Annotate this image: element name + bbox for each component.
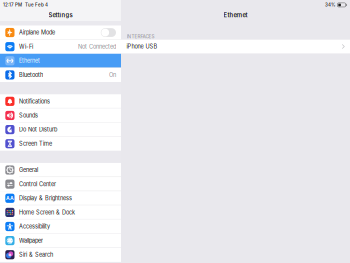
staticText: iPhone USB xyxy=(126,43,157,50)
button[interactable]: Screen Time xyxy=(0,137,121,151)
button[interactable]: Home Screen & Dock xyxy=(0,205,121,219)
staticText: Accessibility xyxy=(19,223,50,230)
button[interactable]: Bluetooth xyxy=(0,68,121,82)
staticText: Bluetooth xyxy=(19,71,43,78)
staticText: Wallpaper xyxy=(19,237,43,244)
button[interactable]: Sounds xyxy=(0,108,121,122)
staticText: Home Screen & Dock xyxy=(19,209,75,216)
button[interactable]: Ethernet xyxy=(0,54,121,68)
staticText: Tue Feb 4 xyxy=(25,2,48,8)
staticText: Control Center xyxy=(19,181,56,188)
staticText: Settings xyxy=(48,11,72,19)
button[interactable]: General xyxy=(0,163,121,177)
button[interactable]: Control Center xyxy=(0,177,121,191)
staticText: Sounds xyxy=(19,112,38,119)
button[interactable]: Wallpaper xyxy=(0,234,121,248)
button[interactable]: Wi-Fi xyxy=(0,40,121,54)
staticText: Display & Brightness xyxy=(19,195,72,202)
button[interactable]: Airplane Mode xyxy=(0,25,121,40)
staticText: AA xyxy=(6,195,14,201)
staticText: On xyxy=(109,71,116,78)
staticText: Ethernet xyxy=(19,57,40,64)
staticText: Notifications xyxy=(19,98,50,105)
staticText: Siri & Search xyxy=(19,251,53,258)
staticText: 12:17 PM xyxy=(3,2,22,8)
button[interactable]: Siri & Search xyxy=(0,248,121,262)
button[interactable]: Notifications xyxy=(0,94,121,108)
staticText: 34% xyxy=(325,2,336,8)
staticText: Wi-Fi xyxy=(19,43,33,50)
staticText: General xyxy=(19,167,38,173)
staticText: INTERFACES xyxy=(126,34,154,39)
button[interactable]: iPhone USB xyxy=(121,40,350,53)
button[interactable]: AA xyxy=(0,191,121,205)
staticText: Not Connected xyxy=(78,43,116,50)
button[interactable]: Accessibility xyxy=(0,219,121,233)
staticText: Screen Time xyxy=(19,140,52,147)
staticText: Do Not Disturb xyxy=(19,126,57,133)
staticText: Airplane Mode xyxy=(19,29,55,36)
staticText: Ethernet xyxy=(223,11,247,19)
button[interactable]: Do Not Disturb xyxy=(0,122,121,137)
